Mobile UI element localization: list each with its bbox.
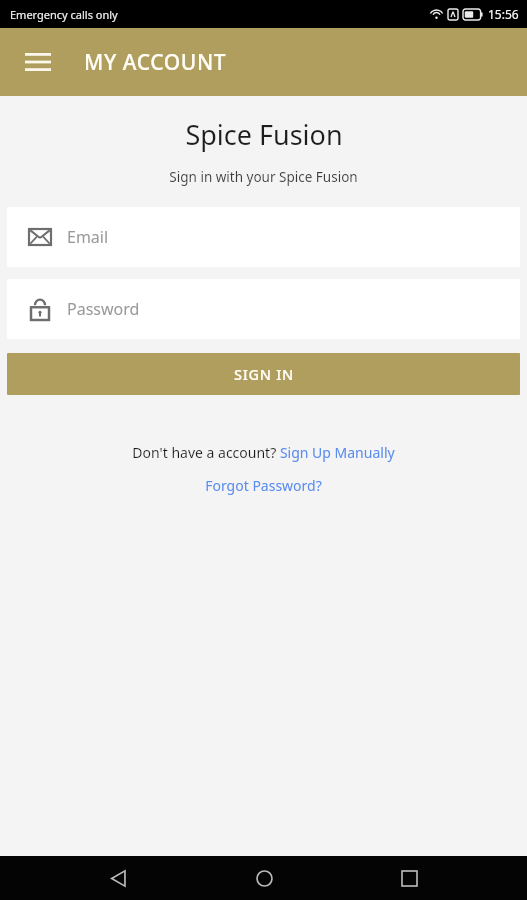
staticText: Email (67, 226, 109, 248)
staticText: 15:56 (488, 6, 519, 22)
staticText: MY ACCOUNT (84, 48, 227, 77)
staticText: Don't have a account? Sign Up Manually (132, 443, 395, 462)
button[interactable]: Don't have a account? Sign Up Manually (0, 443, 527, 462)
button[interactable]: Back (90, 856, 146, 900)
staticText: Password (67, 298, 140, 320)
button[interactable]: Recent apps (381, 856, 437, 900)
staticText: SIGN IN (234, 364, 294, 384)
button[interactable]: Forgot Password? (0, 476, 527, 495)
staticText: Emergency calls only (10, 7, 118, 22)
button[interactable]: Home (236, 856, 292, 900)
button[interactable]: SIGN IN (7, 353, 520, 395)
staticText: Forgot Password? (205, 476, 322, 495)
staticText: Spice Fusion (185, 116, 343, 153)
staticText: Sign in with your Spice Fusion (169, 168, 358, 186)
button[interactable]: Password (7, 279, 520, 339)
button[interactable]: Email (7, 207, 520, 267)
button[interactable]: Open navigation menu (14, 38, 62, 86)
